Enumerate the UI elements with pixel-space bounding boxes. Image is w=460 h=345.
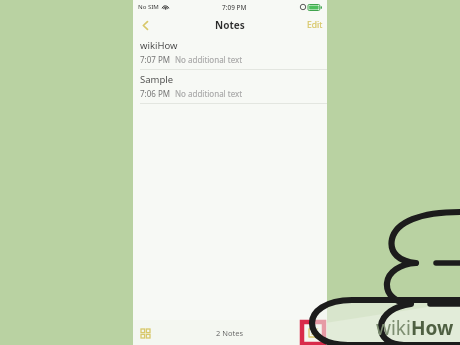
staticText: 2 Notes	[216, 328, 244, 338]
button[interactable]: Edit	[307, 19, 323, 31]
staticText: No SIM	[138, 3, 159, 11]
button[interactable]: Back	[136, 16, 154, 34]
staticText: wiki	[376, 315, 411, 341]
button[interactable]: wikiHow	[133, 36, 327, 69]
button[interactable]: New note	[302, 322, 324, 344]
staticText: Edit	[307, 19, 323, 31]
button[interactable]: Sample	[133, 70, 327, 103]
staticText: 7:09 PM	[222, 3, 247, 12]
button[interactable]: Gallery view	[136, 324, 154, 342]
staticText: wikiHow	[140, 39, 178, 52]
staticText: 7:07 PM	[140, 54, 171, 65]
staticText: 7:06 PM	[140, 88, 171, 99]
staticText: No additional text	[175, 54, 243, 65]
staticText: No additional text	[175, 88, 243, 99]
staticText: Sample	[140, 73, 174, 86]
staticText: How	[411, 315, 454, 341]
staticText: Notes	[215, 18, 245, 32]
